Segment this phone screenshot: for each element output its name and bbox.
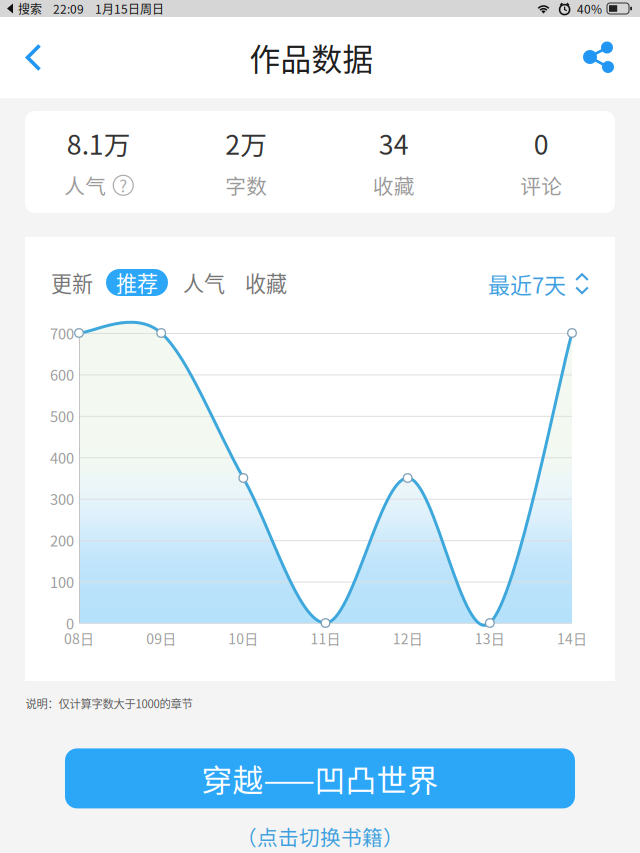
staticText: 人气 bbox=[64, 170, 106, 200]
staticText: 22:09 bbox=[53, 0, 84, 17]
staticText: 收藏 bbox=[373, 170, 415, 200]
button[interactable]: 最近7天 bbox=[455, 268, 589, 300]
button[interactable]: Share bbox=[564, 17, 640, 98]
button[interactable]: 推荐 bbox=[106, 269, 168, 296]
staticText: 最近7天 bbox=[488, 268, 566, 300]
staticText: 400 bbox=[50, 447, 74, 468]
staticText: 300 bbox=[50, 488, 74, 509]
staticText: 评论 bbox=[520, 170, 562, 200]
staticText: 说明：仅计算字数大于1000的章节 bbox=[25, 695, 192, 711]
staticText: ? bbox=[119, 173, 127, 197]
button[interactable]: 更新 bbox=[51, 269, 93, 296]
button[interactable]: 收藏 bbox=[245, 269, 287, 296]
staticText: 700 bbox=[50, 322, 74, 344]
staticText: 字数 bbox=[225, 170, 267, 200]
staticText: 600 bbox=[50, 364, 74, 385]
staticText: 500 bbox=[50, 405, 74, 426]
staticText: 搜索 bbox=[18, 0, 42, 17]
staticText: 0 bbox=[534, 124, 549, 162]
staticText: 1月15日周日 bbox=[95, 0, 164, 17]
staticText: 0 bbox=[66, 612, 74, 634]
staticText: 200 bbox=[50, 529, 74, 551]
staticText: （点击切换书籍） bbox=[236, 821, 404, 851]
button[interactable]: Back bbox=[0, 17, 59, 98]
button[interactable]: 穿越——凹凸世界 bbox=[65, 748, 575, 808]
staticText: 10日 bbox=[228, 628, 258, 648]
staticText: 作品数据 bbox=[249, 35, 373, 80]
staticText: 12日 bbox=[393, 628, 423, 648]
staticText: 推荐 bbox=[116, 267, 158, 298]
button[interactable]: （点击切换书籍） bbox=[236, 819, 404, 853]
staticText: 穿越——凹凸世界 bbox=[201, 756, 438, 801]
staticText: 2万 bbox=[225, 124, 267, 162]
staticText: 40% bbox=[577, 0, 602, 17]
staticText: 34 bbox=[379, 124, 409, 162]
staticText: 09日 bbox=[146, 628, 176, 648]
staticText: 08日 bbox=[64, 628, 94, 648]
staticText: 8.1万 bbox=[67, 124, 131, 162]
staticText: 人气 bbox=[183, 267, 225, 298]
staticText: 100 bbox=[50, 571, 74, 592]
staticText: 11日 bbox=[310, 628, 340, 648]
staticText: 收藏 bbox=[245, 267, 287, 298]
staticText: 14日 bbox=[557, 628, 587, 648]
staticText: 更新 bbox=[51, 267, 93, 298]
staticText: 13日 bbox=[475, 628, 505, 648]
button[interactable]: 人气 bbox=[183, 269, 225, 296]
